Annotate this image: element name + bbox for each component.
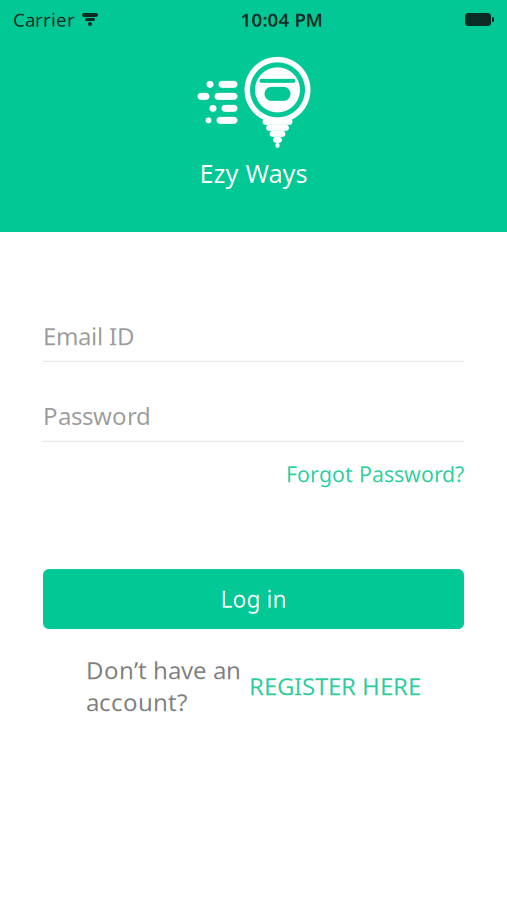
staticText: Log in xyxy=(220,584,286,614)
button[interactable]: Don’t have an account? xyxy=(43,645,464,727)
staticText: Ezy Ways xyxy=(199,156,307,190)
staticText: Carrier xyxy=(13,7,75,32)
staticText: 10:04 PM xyxy=(240,7,322,32)
button[interactable]: Log in xyxy=(43,569,464,629)
button[interactable]: Forgot Password? xyxy=(286,455,464,493)
staticText: Password xyxy=(43,400,151,432)
staticText: Forgot Password? xyxy=(286,460,464,488)
staticText: REGISTER HERE xyxy=(249,670,421,702)
staticText: Email ID xyxy=(43,320,135,352)
staticText: Don’t have an account? xyxy=(86,654,241,718)
